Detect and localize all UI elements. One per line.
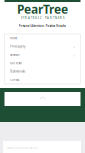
staticText: STRATEGIC PARTNERS	[21, 16, 64, 20]
staticText: Testimonials	[10, 70, 25, 73]
button[interactable]: Testimonials	[4, 67, 80, 76]
button[interactable]: Home	[4, 34, 80, 42]
staticText: Contact	[10, 78, 19, 81]
staticText: Services	[10, 53, 19, 57]
staticText: Philosophy	[10, 45, 25, 48]
staticText: Personal Attention. Positive Results.	[19, 24, 66, 28]
button[interactable]: Services	[4, 51, 80, 59]
button[interactable]: Contact	[4, 76, 80, 84]
staticText: Strategic Business Partners	[7, 146, 38, 150]
button[interactable]: Philosophy	[4, 42, 80, 51]
staticText: ◠	[39, 95, 45, 103]
staticText: Our Team	[10, 61, 21, 65]
staticText: Home	[10, 36, 18, 40]
staticText: +	[73, 44, 75, 49]
button[interactable]: Our Team	[4, 59, 80, 67]
staticText: +	[73, 52, 75, 57]
staticText: PearTree	[17, 1, 68, 17]
